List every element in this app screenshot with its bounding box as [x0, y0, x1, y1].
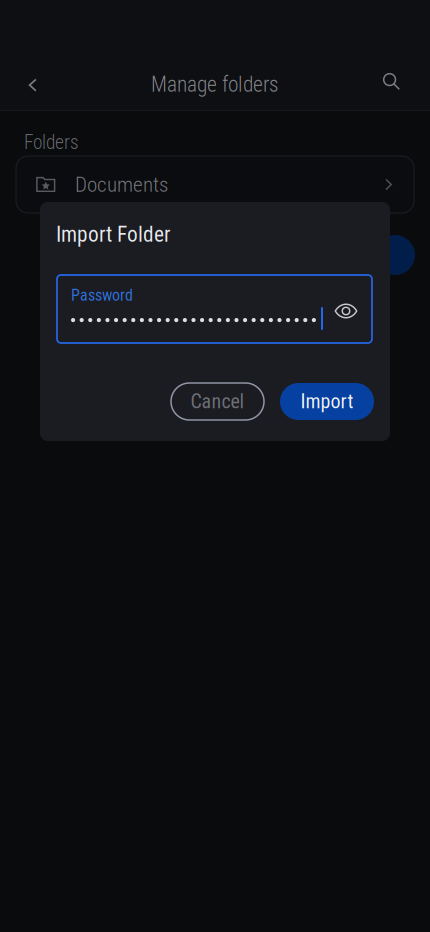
- staticText: Password: [71, 286, 133, 305]
- staticText: Cancel: [190, 390, 244, 413]
- staticText: Manage folders: [151, 72, 279, 97]
- button[interactable]: Documents: [16, 156, 414, 213]
- button[interactable]: Cancel: [171, 383, 264, 420]
- button[interactable]: Search: [370, 60, 414, 104]
- button[interactable]: Add folder: [375, 235, 415, 275]
- button[interactable]: Import: [280, 383, 374, 420]
- staticText: Import: [300, 390, 353, 413]
- button[interactable]: Show password: [329, 294, 363, 328]
- staticText: Folders: [24, 131, 79, 154]
- staticText: Import Folder: [56, 222, 171, 247]
- button[interactable]: Back: [11, 63, 55, 107]
- staticText: Documents: [75, 172, 168, 197]
